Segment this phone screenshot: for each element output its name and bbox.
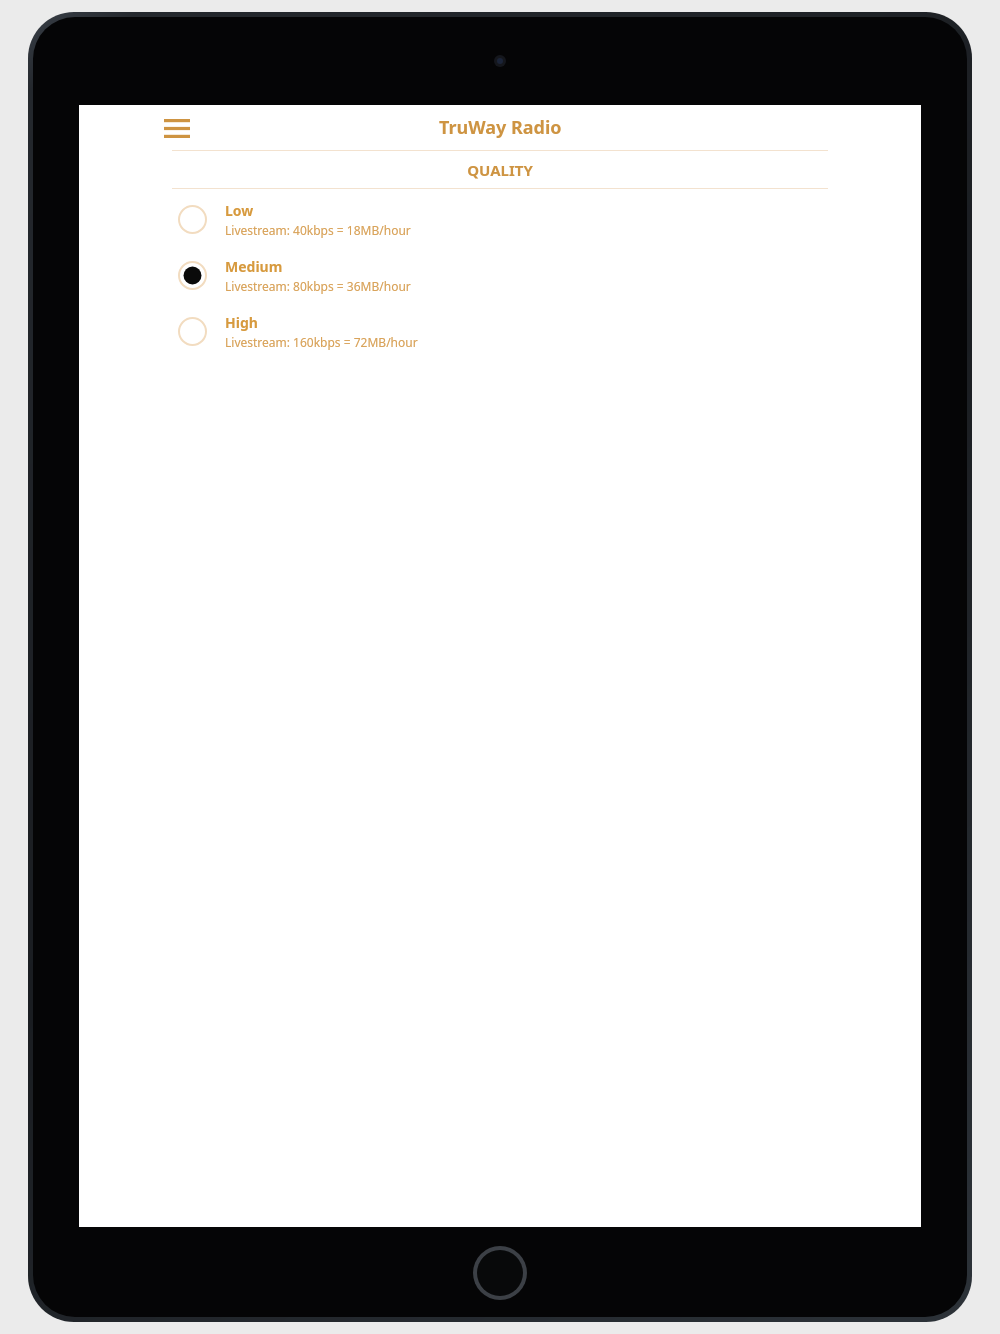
staticText: Low bbox=[225, 201, 254, 220]
button[interactable]: Home bbox=[473, 1246, 527, 1300]
button[interactable]: High bbox=[79, 303, 921, 359]
staticText: QUALITY bbox=[467, 160, 533, 180]
staticText: Livestream: 80kbps = 36MB/hour bbox=[225, 278, 411, 294]
button[interactable]: Medium bbox=[79, 247, 921, 303]
staticText: TruWay Radio bbox=[439, 115, 562, 140]
staticText: Medium bbox=[225, 257, 283, 276]
staticText: High bbox=[225, 313, 258, 332]
staticText: Livestream: 160kbps = 72MB/hour bbox=[225, 334, 418, 350]
button[interactable]: Open navigation menu bbox=[160, 111, 194, 145]
button[interactable]: Low bbox=[79, 191, 921, 247]
staticText: Livestream: 40kbps = 18MB/hour bbox=[225, 222, 411, 238]
